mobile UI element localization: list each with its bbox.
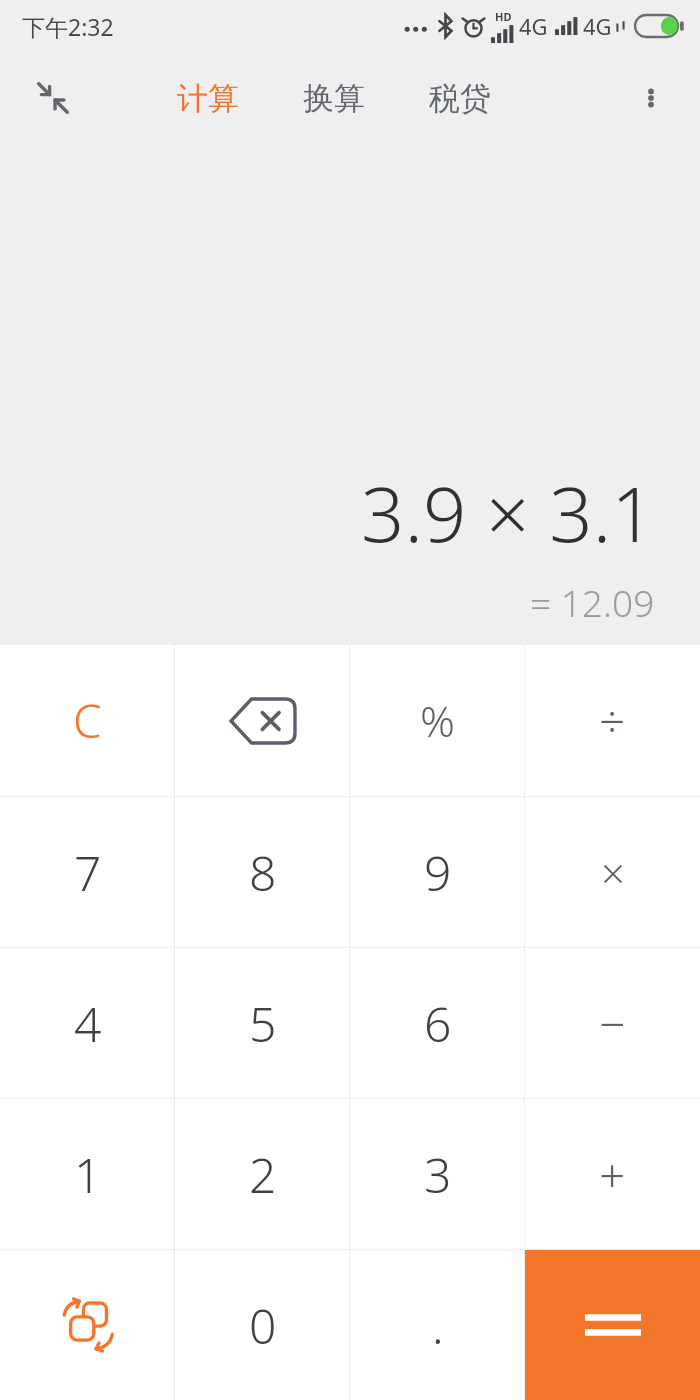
staticText: . <box>432 1293 444 1358</box>
button[interactable]: 计算 <box>167 67 249 130</box>
staticText: ÷ <box>599 689 626 752</box>
staticText: 8 <box>249 840 277 905</box>
staticText: − <box>599 992 626 1055</box>
staticText: 7 <box>74 840 102 905</box>
button[interactable]: 税贷 <box>419 67 501 130</box>
staticText: 2 <box>249 1142 277 1207</box>
button[interactable]: Backspace <box>175 645 350 796</box>
button[interactable]: 8 <box>175 797 350 947</box>
staticText: × <box>601 844 625 901</box>
staticText: 4 <box>74 991 102 1056</box>
button[interactable]: ÷ <box>525 645 700 796</box>
staticText: 换算 <box>303 79 365 118</box>
staticText: 0 <box>249 1293 277 1358</box>
staticText: 税贷 <box>429 79 491 118</box>
staticText: C <box>73 689 102 752</box>
button[interactable]: 5 <box>175 948 350 1098</box>
button[interactable]: C <box>0 645 175 796</box>
staticText: 4G <box>519 11 548 41</box>
button[interactable]: Collapse <box>20 65 86 131</box>
button[interactable]: . <box>350 1250 525 1400</box>
staticText: 1 <box>74 1142 102 1207</box>
staticText: 4G <box>583 11 612 41</box>
staticText: 计算 <box>177 79 239 118</box>
button[interactable]: 2 <box>175 1099 350 1249</box>
button[interactable]: 1 <box>0 1099 175 1249</box>
staticText: 3 <box>424 1142 452 1207</box>
button[interactable]: % <box>350 645 525 796</box>
button[interactable]: More options <box>622 69 680 127</box>
button[interactable]: + <box>525 1099 700 1249</box>
staticText: 6 <box>424 991 452 1056</box>
button[interactable]: 9 <box>350 797 525 947</box>
staticText: = 12.09 <box>530 577 655 627</box>
staticText: HD <box>495 9 512 24</box>
button[interactable]: 3 <box>350 1099 525 1249</box>
button[interactable]: × <box>525 797 700 947</box>
button[interactable]: 0 <box>175 1250 350 1400</box>
staticText: 9 <box>424 840 452 905</box>
staticText: % <box>420 691 455 750</box>
button[interactable]: − <box>525 948 700 1098</box>
button[interactable]: 4 <box>0 948 175 1098</box>
staticText: 下午2:32 <box>22 11 114 42</box>
button[interactable]: 换算 <box>293 67 375 130</box>
button[interactable]: 6 <box>350 948 525 1098</box>
staticText: 5 <box>249 991 277 1056</box>
button[interactable]: 7 <box>0 797 175 947</box>
button[interactable]: Equals <box>525 1250 700 1400</box>
staticText: 3.9 × 3.1 <box>361 461 655 565</box>
staticText: + <box>599 1143 626 1206</box>
button[interactable]: Switch mode <box>0 1250 175 1400</box>
